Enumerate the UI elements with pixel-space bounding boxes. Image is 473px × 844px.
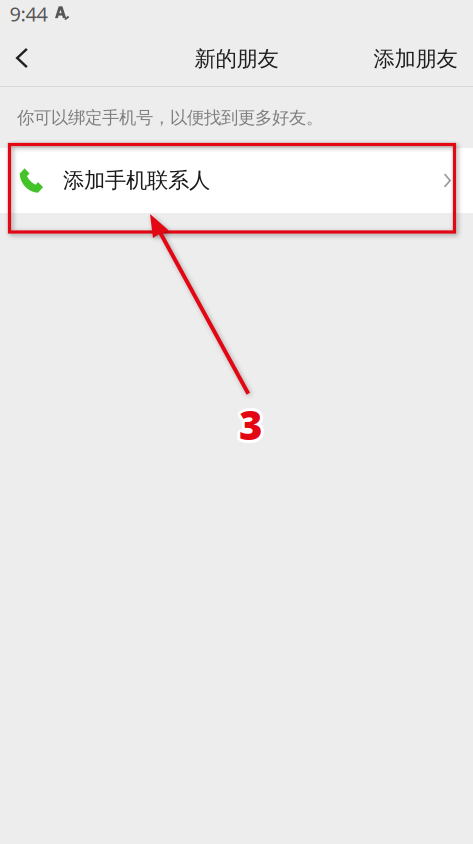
staticText: 3 [242, 396, 265, 450]
staticText: 添加手机联系人 [63, 167, 210, 194]
staticText: 3 [242, 398, 265, 451]
staticText: 3 [237, 401, 260, 454]
staticText: 3 [236, 396, 259, 450]
staticText: 添加朋友 [373, 46, 457, 72]
button[interactable]: 添加朋友 [0, 35, 473, 83]
staticText: 3 [242, 399, 265, 453]
staticText: 3 [239, 395, 262, 448]
button[interactable]: 添加手机联系人 [0, 148, 473, 213]
staticText: 3 [236, 399, 259, 453]
staticText: 3 [239, 398, 262, 451]
staticText: 3 [239, 401, 262, 454]
button[interactable]: 返回 [0, 34, 44, 82]
staticText: 3 [240, 401, 263, 454]
staticText: 你可以绑定手机号，以便找到更多好友。 [17, 107, 323, 128]
staticText: 3 [240, 395, 263, 448]
staticText: 新的朋友 [194, 46, 278, 72]
staticText: 3 [236, 398, 259, 451]
staticText: 3 [237, 395, 260, 448]
staticText: 9:44 [9, 0, 47, 27]
